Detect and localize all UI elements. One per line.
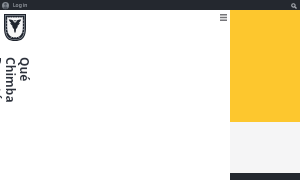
button[interactable]: Bogotá coat of arms xyxy=(4,14,26,41)
button[interactable]: Search xyxy=(289,1,298,10)
staticText: Log in xyxy=(13,2,28,9)
button[interactable]: Qué Chimba Bogotá xyxy=(0,57,33,127)
button[interactable]: Log in xyxy=(2,2,28,9)
button[interactable]: Open menu xyxy=(215,9,232,25)
staticText: Qué Chimba Bogotá xyxy=(0,57,33,103)
